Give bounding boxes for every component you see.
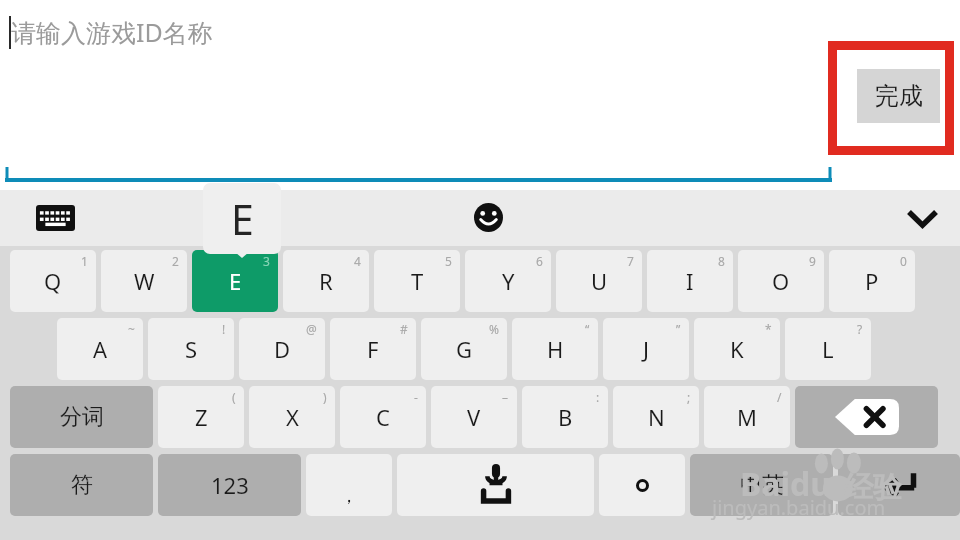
button[interactable]: G: [421, 318, 507, 380]
staticText: 1: [81, 253, 88, 269]
staticText: ): [323, 389, 327, 405]
staticText: 经验: [844, 469, 902, 506]
staticText: %: [489, 321, 499, 337]
staticText: N: [648, 402, 665, 432]
staticText: A: [93, 334, 108, 364]
button[interactable]: Backspace: [795, 386, 938, 448]
staticText: #: [400, 321, 408, 337]
staticText: 4: [354, 253, 361, 269]
button[interactable]: B: [522, 386, 608, 448]
staticText: 完成: [875, 81, 923, 111]
button[interactable]: W: [101, 250, 187, 312]
staticText: R: [319, 266, 333, 296]
button[interactable]: K: [694, 318, 780, 380]
staticText: 分词: [60, 403, 104, 431]
button[interactable]: V: [431, 386, 517, 448]
button[interactable]: I: [647, 250, 733, 312]
button[interactable]: R: [283, 250, 369, 312]
button[interactable]: O: [738, 250, 824, 312]
staticText: ”: [676, 321, 681, 337]
staticText: 123: [211, 470, 249, 500]
staticText: *: [765, 321, 772, 337]
button[interactable]: Enter: [838, 454, 960, 516]
staticText: 3: [263, 253, 270, 269]
staticText: U: [591, 266, 608, 296]
other: Space, voice input: [469, 464, 523, 506]
staticText: X: [286, 402, 299, 432]
button[interactable]: J: [603, 318, 689, 380]
staticText: P: [865, 266, 879, 296]
staticText: :: [596, 389, 600, 405]
staticText: 0: [900, 253, 907, 269]
button[interactable]: P: [829, 250, 915, 312]
staticText: jingyan.baidu.com: [712, 494, 886, 521]
button[interactable]: M: [704, 386, 790, 448]
staticText: 6: [536, 253, 543, 269]
button[interactable]: Y: [465, 250, 551, 312]
staticText: G: [456, 334, 473, 364]
staticText: -: [414, 389, 418, 405]
button[interactable]: C: [340, 386, 426, 448]
other: Enter: [882, 471, 917, 499]
button[interactable]: Z: [158, 386, 244, 448]
staticText: 8: [718, 253, 725, 269]
button[interactable]: 中英: [690, 454, 833, 516]
button[interactable]: T: [374, 250, 460, 312]
button[interactable]: Q: [10, 250, 96, 312]
button[interactable]: 完成: [857, 69, 940, 123]
button[interactable]: Space, voice input: [397, 454, 594, 516]
staticText: W: [134, 266, 155, 296]
other: Backspace: [835, 399, 899, 435]
button[interactable]: U: [556, 250, 642, 312]
button[interactable]: ，: [306, 454, 392, 516]
staticText: (: [232, 389, 236, 405]
button[interactable]: 123: [158, 454, 301, 516]
staticText: 7: [627, 253, 634, 269]
staticText: Q: [44, 266, 62, 296]
staticText: V: [467, 402, 481, 432]
staticText: !: [222, 321, 226, 337]
staticText: O: [772, 266, 790, 296]
staticText: 5: [445, 253, 452, 269]
button[interactable]: N: [613, 386, 699, 448]
staticText: ;: [687, 389, 691, 405]
button[interactable]: E: [192, 250, 278, 312]
staticText: ，: [340, 485, 358, 508]
staticText: 请输入游戏ID名称: [11, 15, 213, 49]
staticText: ~: [128, 321, 135, 337]
staticText: I: [686, 266, 694, 296]
staticText: B: [558, 402, 573, 432]
staticText: 9: [809, 253, 816, 269]
staticText: D: [274, 334, 291, 364]
button[interactable]: 分词: [10, 386, 153, 448]
staticText: Y: [502, 266, 515, 296]
staticText: 符: [71, 471, 93, 499]
staticText: Baidu: [740, 462, 832, 506]
staticText: C: [376, 402, 390, 432]
button[interactable]: L: [785, 318, 871, 380]
staticText: T: [411, 266, 424, 296]
staticText: L: [822, 334, 834, 364]
button[interactable]: F: [330, 318, 416, 380]
button[interactable]: D: [239, 318, 325, 380]
staticText: J: [643, 334, 650, 364]
button[interactable]: H: [512, 318, 598, 380]
button[interactable]: 符: [10, 454, 153, 516]
staticText: M: [737, 402, 757, 432]
button[interactable]: Hide keyboard: [903, 199, 941, 237]
staticText: /: [777, 389, 782, 405]
staticText: F: [367, 334, 379, 364]
button[interactable]: A: [57, 318, 143, 380]
button[interactable]: X: [249, 386, 335, 448]
staticText: H: [547, 334, 564, 364]
staticText: “: [585, 321, 590, 337]
button[interactable]: [599, 454, 685, 516]
button[interactable]: Emoji: [470, 199, 507, 236]
staticText: Z: [195, 402, 208, 432]
staticText: E: [231, 191, 254, 247]
button[interactable]: S: [148, 318, 234, 380]
staticText: 中英: [740, 471, 784, 499]
staticText: K: [730, 334, 744, 364]
staticText: –: [502, 389, 509, 405]
button[interactable]: Input method settings: [33, 202, 77, 234]
